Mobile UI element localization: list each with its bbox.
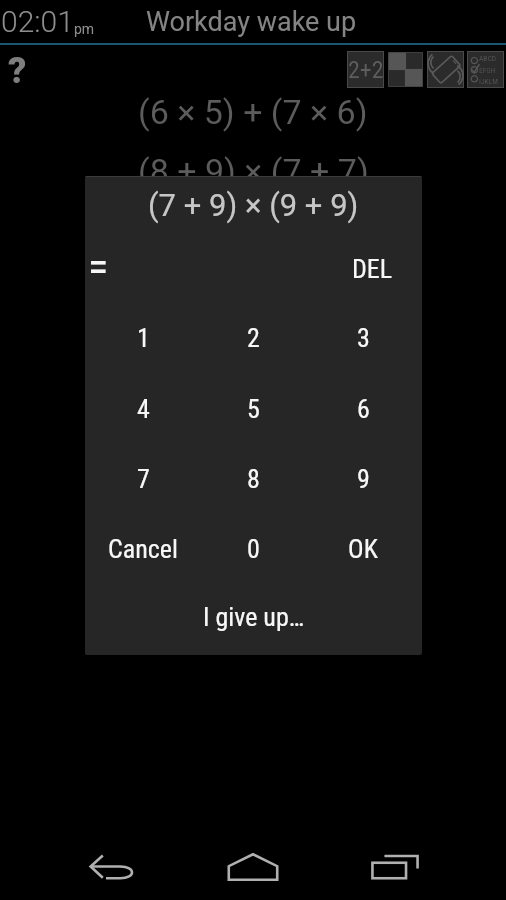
staticText: 2 [247, 323, 260, 353]
staticText: EFGH [479, 66, 496, 75]
button[interactable]: 7 [88, 444, 198, 514]
staticText: pm [74, 21, 95, 37]
button[interactable]: 3 [308, 303, 418, 373]
button[interactable]: 9 [308, 444, 418, 514]
staticText: 4 [137, 394, 150, 424]
staticText: = [88, 242, 109, 286]
button[interactable]: 8 [198, 444, 308, 514]
button[interactable]: 5 [198, 374, 308, 444]
button[interactable]: 0 [198, 514, 308, 584]
button[interactable]: 1 [88, 303, 198, 373]
staticText: (8 + 9) × (7 + 7) [138, 151, 369, 191]
staticText: 8 [247, 464, 260, 494]
button[interactable]: Cancel [88, 514, 198, 584]
button[interactable]: I give up… [85, 582, 422, 652]
button[interactable]: Shake puzzle [427, 51, 464, 88]
staticText: OK [348, 534, 378, 564]
staticText: 6 [357, 394, 370, 424]
staticText: 3 [357, 323, 370, 353]
staticText: 9 [357, 464, 370, 494]
button[interactable]: Recent apps [359, 831, 431, 900]
button[interactable]: Multiple choice puzzle [467, 51, 504, 88]
staticText: I give up… [203, 602, 305, 632]
button[interactable]: Pattern puzzle [387, 51, 424, 88]
button[interactable]: Help [0, 48, 40, 94]
staticText: ? [8, 50, 27, 92]
staticText: (6 × 5) + (7 × 6) [138, 92, 368, 132]
staticText: 02:01 [1, 4, 74, 39]
staticText: 1 [137, 323, 150, 353]
staticText: Workday wake up [146, 6, 357, 38]
staticText: 5 [247, 394, 260, 424]
button[interactable]: Home [217, 831, 289, 900]
button[interactable]: 4 [88, 374, 198, 444]
staticText: (7 + 9) × (9 + 9) [148, 187, 359, 223]
staticText: DEL [352, 254, 393, 284]
staticText: ABCD [479, 54, 496, 63]
button[interactable]: 2 [198, 303, 308, 373]
staticText: 2+2 [348, 56, 383, 84]
staticText: Cancel [108, 534, 178, 564]
staticText: 0 [247, 534, 260, 564]
button[interactable]: OK [308, 514, 418, 584]
staticText: IJKLM [479, 77, 498, 86]
button[interactable]: Arithmetic puzzle [347, 51, 384, 88]
button[interactable]: Back [76, 831, 148, 900]
button[interactable]: DEL [346, 248, 399, 290]
button[interactable]: 6 [308, 374, 418, 444]
staticText: 7 [137, 464, 150, 494]
